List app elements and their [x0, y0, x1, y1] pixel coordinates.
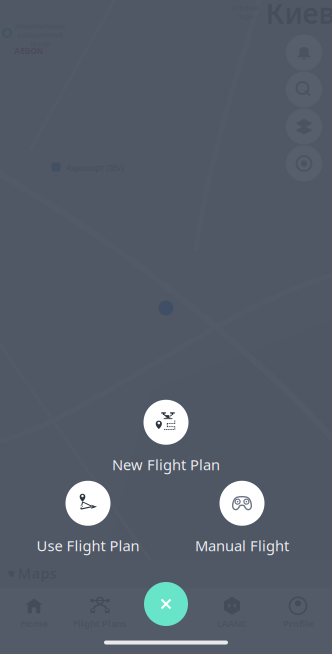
button[interactable]: New Flight Plan: [112, 400, 220, 474]
button[interactable]: LAANC: [199, 594, 265, 632]
button[interactable]: Use Flight Plan: [36, 481, 139, 555]
staticText: New Flight Plan: [112, 455, 220, 474]
staticText: Аэропорт (IEV): [66, 163, 124, 173]
button[interactable]: Notifications: [286, 34, 322, 70]
staticText: Киев: [265, 0, 332, 32]
staticText: Manual Flight: [195, 536, 289, 555]
button[interactable]: Manual Flight: [195, 481, 289, 555]
staticText: [165, 617, 167, 630]
staticText: Use Flight Plan: [36, 536, 139, 555]
button[interactable]: Map layers: [286, 108, 322, 144]
button[interactable]: Close: [144, 582, 188, 626]
staticText: AEGON: [14, 46, 43, 56]
staticText: Maps: [17, 563, 56, 583]
button[interactable]: Locate me: [286, 145, 322, 181]
button[interactable]: Search: [286, 71, 322, 107]
button[interactable]: Profile: [265, 594, 331, 632]
button[interactable]: Flight Plans: [67, 594, 133, 632]
button[interactable]: Home: [1, 594, 67, 632]
button[interactable]: [133, 594, 199, 632]
